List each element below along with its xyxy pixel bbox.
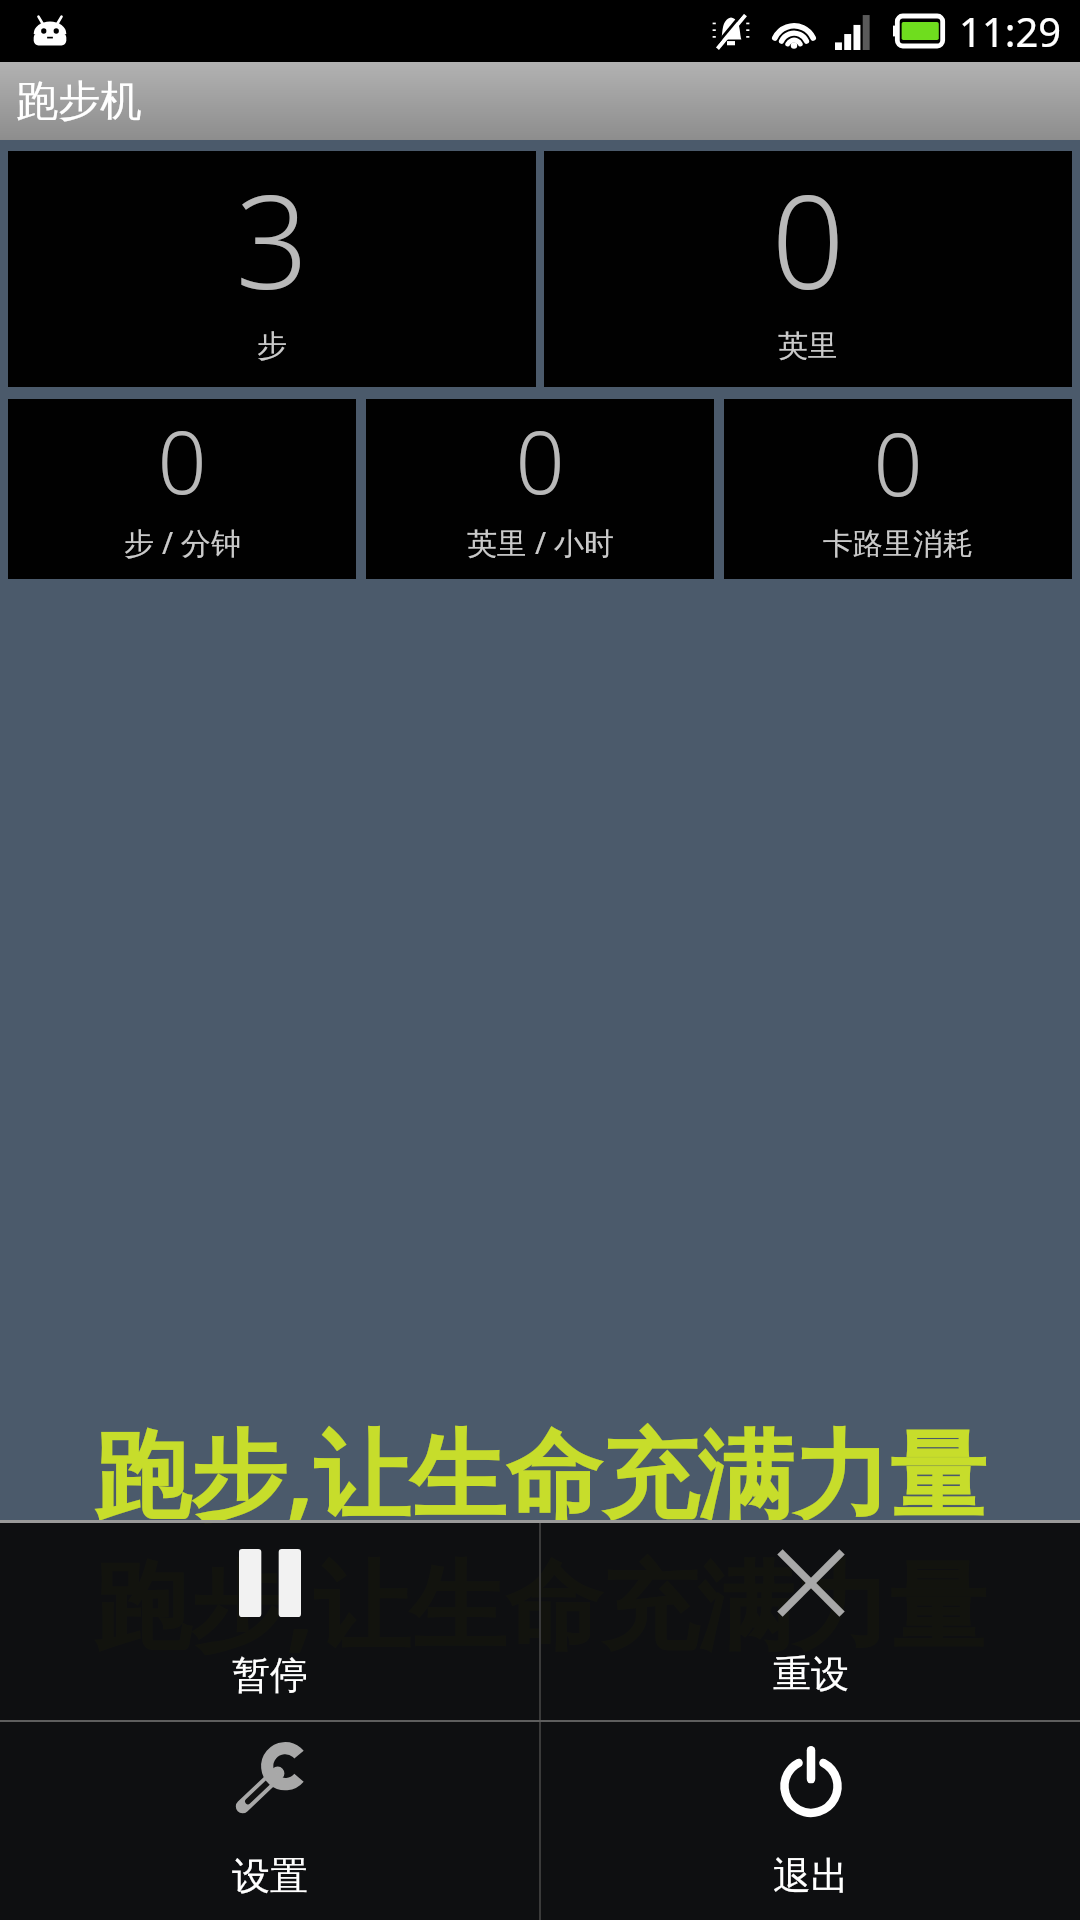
button[interactable]: 0 <box>724 399 1072 579</box>
button[interactable]: 退出 <box>541 1722 1080 1920</box>
button[interactable]: 0 <box>366 399 714 579</box>
button[interactable]: 3 <box>8 151 536 387</box>
staticText: 3 <box>235 152 309 326</box>
staticText: 英里 / 小时 <box>467 522 614 563</box>
staticText: 0 <box>157 402 207 519</box>
button[interactable]: 重设 <box>541 1523 1080 1720</box>
button[interactable]: 0 <box>8 399 356 579</box>
button[interactable]: 暂停 <box>0 1523 539 1720</box>
staticText: 跑步,让生命充满力量 <box>0 1537 1080 1668</box>
button[interactable]: 0 <box>544 151 1072 387</box>
staticText: 暂停 <box>232 1651 308 1699</box>
staticText: 0 <box>873 404 923 521</box>
staticText: 英里 <box>778 327 838 365</box>
staticText: 0 <box>515 402 565 519</box>
staticText: 11:29 <box>959 4 1062 58</box>
button[interactable]: 设置 <box>0 1722 539 1920</box>
staticText: 步 / 分钟 <box>124 522 241 563</box>
staticText: 重设 <box>773 1650 849 1698</box>
staticText: 退出 <box>773 1852 849 1900</box>
staticText: 跑步,让生命充满力量 <box>0 1406 1080 1537</box>
staticText: 0 <box>771 152 845 326</box>
staticText: 步 <box>257 327 287 365</box>
staticText: 卡路里消耗 <box>823 525 973 563</box>
staticText: 跑步机 <box>16 75 142 128</box>
staticText: 设置 <box>232 1852 308 1900</box>
